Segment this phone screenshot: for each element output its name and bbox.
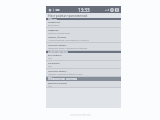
- staticText: Включено: [48, 24, 59, 27]
- staticText: Очистить память: [48, 70, 67, 73]
- other: Battery: [115, 8, 119, 12]
- button[interactable]: Обновление системы: [46, 77, 121, 81]
- staticText: Память приложения: [48, 32, 70, 35]
- button[interactable]: Все сервисы: [46, 53, 121, 61]
- staticText: Автозапуск: [48, 21, 61, 24]
- staticText: Обновление системы: [48, 77, 78, 81]
- button[interactable]: Очистить память: [46, 43, 121, 51]
- button[interactable]: Очистить память: [46, 69, 121, 77]
- staticText: Очистить память: [48, 44, 67, 47]
- staticText: Память, батарея: [48, 36, 66, 39]
- staticText: 13:33: [78, 7, 90, 13]
- button[interactable]: Категории: [46, 61, 121, 69]
- staticText: Все: [48, 65, 52, 68]
- button[interactable]: Home: [48, 8, 52, 12]
- button[interactable]: Доступно памяти: [46, 81, 121, 88]
- staticText: Все сервисы: [48, 54, 62, 57]
- staticText: screenshot: [70, 112, 91, 117]
- staticText: Доступно памяти: [48, 82, 67, 85]
- button[interactable]: Память, батарея: [46, 35, 121, 43]
- staticText: Нет: [48, 85, 52, 88]
- button[interactable]: Автозапуск: [46, 20, 121, 28]
- button[interactable]: Сведения: [46, 28, 121, 36]
- staticText: Настройки приложений: [48, 13, 88, 18]
- staticText: Сведения: [48, 29, 59, 32]
- button[interactable]: Rotate screen: [110, 8, 114, 12]
- staticText: Удаление кеша и временных файлов: [48, 47, 88, 50]
- button[interactable]: Настройки приложений: [46, 13, 121, 18]
- staticText: Дополнительно: [48, 50, 68, 53]
- staticText: Нет: [48, 57, 52, 60]
- staticText: Использование приложений и памяти: [48, 39, 89, 42]
- staticText: Категории: [48, 62, 60, 65]
- staticText: Общие: [48, 18, 57, 21]
- staticText: Удалить ненужные файлы и кеш: [48, 73, 83, 76]
